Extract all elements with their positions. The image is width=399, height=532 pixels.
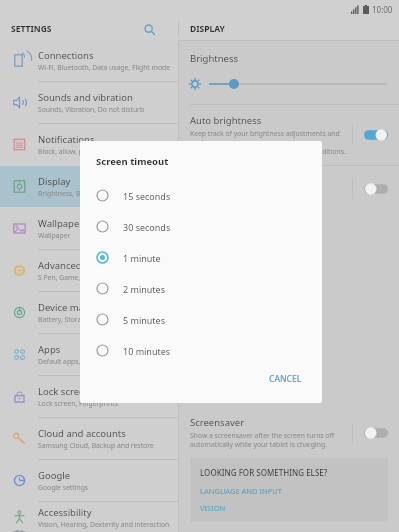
staticText: 1 minute (123, 252, 161, 264)
button[interactable]: 10 minutes (80, 335, 322, 366)
staticText: Block, allow, prioritise (38, 147, 108, 156)
staticText: Battery, Storage, Memory (38, 315, 120, 324)
staticText: LOOKING FOR SOMETHING ELSE? (200, 467, 328, 478)
button[interactable]: Sounds and vibration (0, 82, 178, 123)
button[interactable]: 5 minutes (80, 304, 322, 335)
button[interactable]: CANCEL (263, 369, 308, 389)
staticText: 10:00 (372, 4, 393, 15)
staticText: Auto brightness (190, 114, 262, 127)
button[interactable]: Blue light filter (179, 166, 399, 212)
staticText: Default apps, App permissions (38, 357, 136, 366)
staticText: Device maintenance (38, 301, 129, 314)
button[interactable]: Auto brightness (353, 121, 399, 149)
staticText: Accessibility (38, 506, 92, 519)
staticText: CANCEL (269, 373, 302, 385)
staticText: 30 seconds (123, 221, 171, 233)
staticText: Lock screen, Fingerprints (38, 399, 118, 408)
staticText: SETTINGS (11, 23, 52, 35)
button[interactable] (179, 74, 399, 94)
button[interactable]: VISION (200, 503, 226, 513)
staticText: Lock screen and security (38, 385, 148, 398)
button[interactable]: Cloud and accounts (0, 418, 178, 459)
button[interactable]: Search (140, 20, 158, 38)
button[interactable]: Device maintenance (0, 292, 178, 333)
staticText: Screensaver (190, 416, 245, 429)
staticText: S Pen, Game, One-handed mode (38, 273, 142, 282)
staticText: Screen timeout (96, 155, 169, 168)
staticText: Google settings (38, 483, 89, 492)
button[interactable]: 1 minute (80, 242, 322, 273)
button[interactable]: Connections (0, 40, 178, 81)
staticText: DISPLAY (190, 23, 225, 35)
button[interactable]: 15 seconds (80, 180, 322, 211)
staticText: Connections (38, 49, 94, 62)
button[interactable]: Auto brightness (179, 105, 399, 165)
button[interactable]: Screensaver (353, 419, 399, 447)
staticText: Sounds, Vibration, Do not disturb (38, 105, 145, 114)
staticText: Wi-Fi, Bluetooth, Data usage, Flight mod… (38, 63, 171, 72)
staticText: Samsung Cloud, Backup and restore (38, 441, 154, 450)
button[interactable]: 2 minutes (80, 273, 322, 304)
staticText: Vision, Hearing, Dexterity and interacti… (38, 520, 170, 529)
staticText: Wallpaper (38, 231, 71, 240)
staticText: 10 minutes (123, 345, 171, 357)
staticText: Sounds and vibration (38, 91, 133, 104)
staticText: Display (38, 175, 71, 188)
button[interactable]: Lock screen and security (0, 376, 178, 417)
button[interactable]: Screensaver (179, 407, 399, 458)
button[interactable]: 30 seconds (80, 211, 322, 242)
button[interactable]: Notifications (0, 124, 178, 165)
staticText: Wallpaper (38, 217, 84, 230)
button[interactable]: Advanced features (0, 250, 178, 291)
staticText: Brightness (190, 52, 239, 65)
button[interactable]: Display (0, 166, 178, 207)
staticText: Cloud and accounts (38, 427, 126, 440)
staticText: Keep track of your brightness adjustment… (190, 129, 352, 156)
staticText: Advanced features (38, 259, 122, 272)
button[interactable]: Apps (0, 334, 178, 375)
button[interactable]: Blue light filter (353, 175, 399, 203)
staticText: Show a screensaver after the screen turn… (190, 431, 335, 449)
button[interactable]: LANGUAGE AND INPUT (200, 486, 282, 496)
staticText: 15 seconds (123, 190, 171, 202)
staticText: 5 minutes (123, 314, 165, 326)
staticText: Notifications (38, 133, 95, 146)
button[interactable]: Accessibility (0, 502, 178, 532)
staticText: Google (38, 469, 71, 482)
staticText: 2 minutes (123, 283, 165, 295)
staticText: Brightness, Blue light filter, Home scre… (38, 189, 168, 198)
button[interactable]: Wallpaper (0, 208, 178, 249)
staticText: Apps (38, 343, 61, 356)
button[interactable]: Google (0, 460, 178, 501)
